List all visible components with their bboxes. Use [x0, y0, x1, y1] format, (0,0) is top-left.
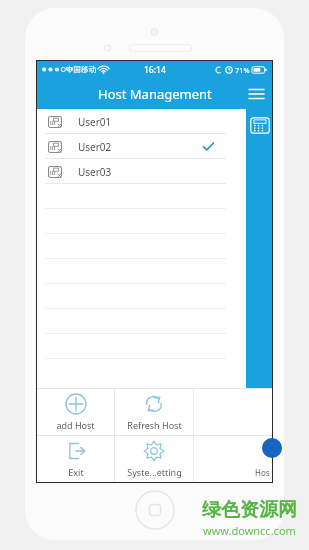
staticText: Hos	[255, 467, 270, 478]
staticText: Host Management	[98, 85, 212, 103]
button[interactable]: User03	[37, 159, 272, 184]
button[interactable]: Exit	[37, 436, 114, 482]
button[interactable]: Refresh Host	[115, 389, 193, 435]
button[interactable]: Syste...etting	[115, 436, 193, 482]
staticText: add Host	[56, 419, 95, 431]
staticText: User01	[78, 115, 112, 129]
button[interactable]: User01	[37, 109, 272, 134]
button[interactable]: Menu	[241, 78, 272, 109]
button[interactable]: add Host	[37, 389, 114, 435]
staticText: 中国移动	[66, 65, 96, 74]
staticText: www.downcc.com	[203, 523, 296, 538]
button[interactable]: User02	[37, 134, 272, 159]
staticText: Refresh Host	[127, 419, 182, 431]
staticText: 绿色资源网	[202, 498, 297, 522]
staticText: User02	[78, 140, 112, 154]
staticText: Exit	[68, 466, 84, 478]
staticText: 71%	[235, 65, 250, 75]
button[interactable]: Keypad	[246, 109, 272, 388]
staticText: User03	[78, 165, 112, 179]
staticText: 16:14	[144, 64, 166, 76]
staticText: Syste...etting	[127, 466, 182, 478]
